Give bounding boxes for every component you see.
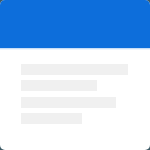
button[interactable]: App bar	[0, 0, 150, 48]
